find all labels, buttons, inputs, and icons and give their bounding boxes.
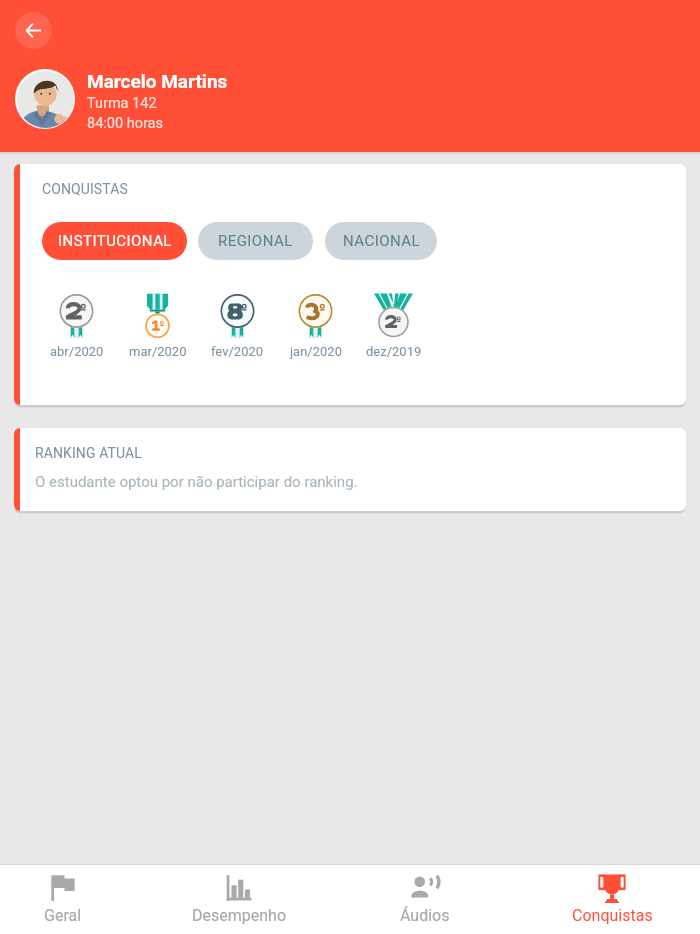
staticText: REGIONAL: [218, 232, 293, 250]
staticText: RANKING ATUAL: [35, 445, 142, 461]
staticText: fev/2020: [211, 344, 264, 359]
staticText: Marcelo Martins: [87, 70, 228, 92]
staticText: Áudios: [400, 906, 450, 925]
staticText: Desempenho: [192, 906, 286, 925]
button[interactable]: abr/2020: [37, 292, 116, 359]
button[interactable]: jan/2020: [276, 292, 355, 359]
button[interactable]: mar/2020: [118, 292, 197, 359]
staticText: 84:00 horas: [87, 115, 163, 132]
staticText: NACIONAL: [343, 232, 420, 250]
button[interactable]: fev/2020: [198, 292, 277, 359]
button[interactable]: Desempenho: [164, 865, 314, 934]
staticText: abr/2020: [50, 344, 104, 359]
staticText: dez/2019: [366, 344, 422, 359]
staticText: CONQUISTAS: [42, 181, 128, 197]
button[interactable]: dez/2019: [354, 292, 433, 359]
staticText: INSTITUCIONAL: [58, 232, 172, 250]
button[interactable]: REGIONAL: [198, 222, 313, 260]
button[interactable]: Áudios: [350, 865, 500, 934]
button[interactable]: Geral: [1, 865, 125, 934]
staticText: O estudante optou por não participar do …: [35, 473, 358, 491]
button[interactable]: Conquistas: [537, 865, 687, 934]
button[interactable]: NACIONAL: [325, 222, 437, 260]
staticText: mar/2020: [129, 344, 187, 359]
staticText: jan/2020: [290, 344, 342, 359]
button[interactable]: INSTITUCIONAL: [42, 222, 187, 260]
staticText: Geral: [44, 906, 82, 925]
button[interactable]: Back: [15, 12, 52, 49]
staticText: Turma 142: [87, 95, 157, 112]
staticText: Conquistas: [572, 906, 653, 925]
